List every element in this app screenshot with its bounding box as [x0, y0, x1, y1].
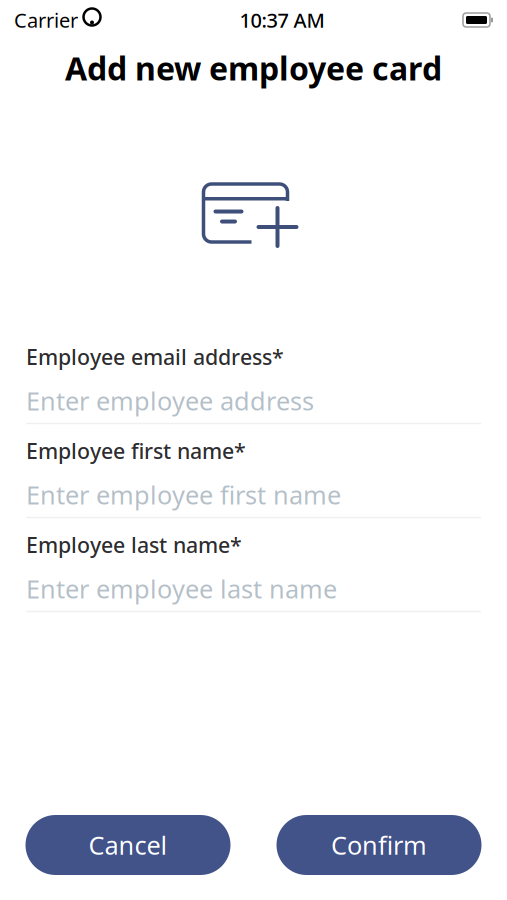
button[interactable]: Confirm	[276, 815, 481, 875]
staticText: Enter employee address	[26, 384, 314, 417]
staticText: Enter employee last name	[26, 572, 337, 605]
staticText: 10:37 AM	[239, 7, 324, 33]
staticText: Employee first name*	[26, 437, 246, 465]
staticText: Carrier	[14, 7, 78, 33]
staticText: Cancel	[88, 828, 167, 862]
staticText: Confirm	[331, 828, 427, 862]
button[interactable]: Cancel	[25, 815, 230, 875]
staticText: Enter employee first name	[26, 478, 341, 511]
staticText: Employee last name*	[26, 531, 242, 559]
staticText: Employee email address*	[26, 343, 284, 371]
staticText: Add new employee card	[65, 47, 442, 89]
